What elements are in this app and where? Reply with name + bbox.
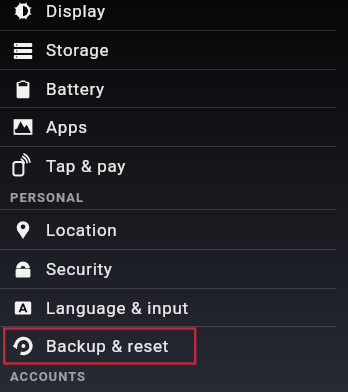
staticText: Storage — [46, 40, 110, 60]
button[interactable]: Tap & pay — [0, 147, 348, 185]
staticText: Battery — [46, 79, 105, 99]
button[interactable]: Backup & reset — [0, 327, 348, 364]
staticText: Location — [46, 220, 118, 240]
button[interactable]: Language & input — [0, 289, 348, 326]
staticText: Apps — [46, 117, 88, 137]
button[interactable]: Location — [0, 210, 348, 249]
staticText: Backup & reset — [46, 336, 170, 356]
button[interactable]: Battery — [0, 70, 348, 107]
button[interactable]: Storage — [0, 31, 348, 69]
button[interactable]: Security — [0, 250, 348, 288]
button[interactable]: Display — [0, 0, 348, 30]
staticText: Language & input — [46, 298, 189, 318]
staticText: Display — [46, 1, 106, 21]
staticText: ACCOUNTS — [10, 369, 87, 384]
staticText: Tap & pay — [46, 156, 127, 176]
staticText: Security — [46, 259, 113, 279]
button[interactable]: Apps — [0, 108, 348, 146]
staticText: PERSONAL — [10, 190, 85, 205]
